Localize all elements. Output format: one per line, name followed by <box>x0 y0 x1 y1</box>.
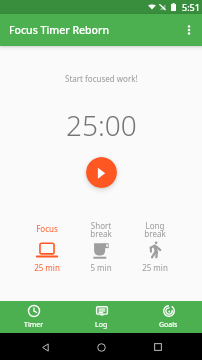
staticText: Short break <box>90 220 112 237</box>
staticText: 25 min <box>34 262 60 273</box>
staticText: 5 min <box>90 262 112 273</box>
staticText: Long break <box>144 220 166 237</box>
staticText: Focus Timer Reborn <box>9 23 110 37</box>
staticText: 25 min <box>142 262 168 273</box>
button[interactable]: Short break <box>74 220 128 273</box>
button[interactable]: Log <box>68 301 135 333</box>
staticText: 25:00 <box>66 106 137 144</box>
staticText: Start focused work! <box>65 73 138 84</box>
staticText: Timer <box>24 320 44 330</box>
staticText: Focus <box>36 223 58 234</box>
button[interactable]: Recents <box>146 335 170 359</box>
staticText: Goals <box>159 320 178 330</box>
staticText: 5:51 <box>182 1 200 13</box>
button[interactable]: Home <box>89 335 113 359</box>
button[interactable]: Focus <box>20 220 74 273</box>
button[interactable]: Goals <box>135 301 202 333</box>
button[interactable]: Timer <box>0 301 68 333</box>
button[interactable]: Start timer <box>86 157 117 188</box>
staticText: Log <box>95 320 108 330</box>
button[interactable]: Back <box>33 335 57 359</box>
button[interactable]: Long break <box>128 220 182 273</box>
button[interactable]: More options <box>176 17 202 43</box>
